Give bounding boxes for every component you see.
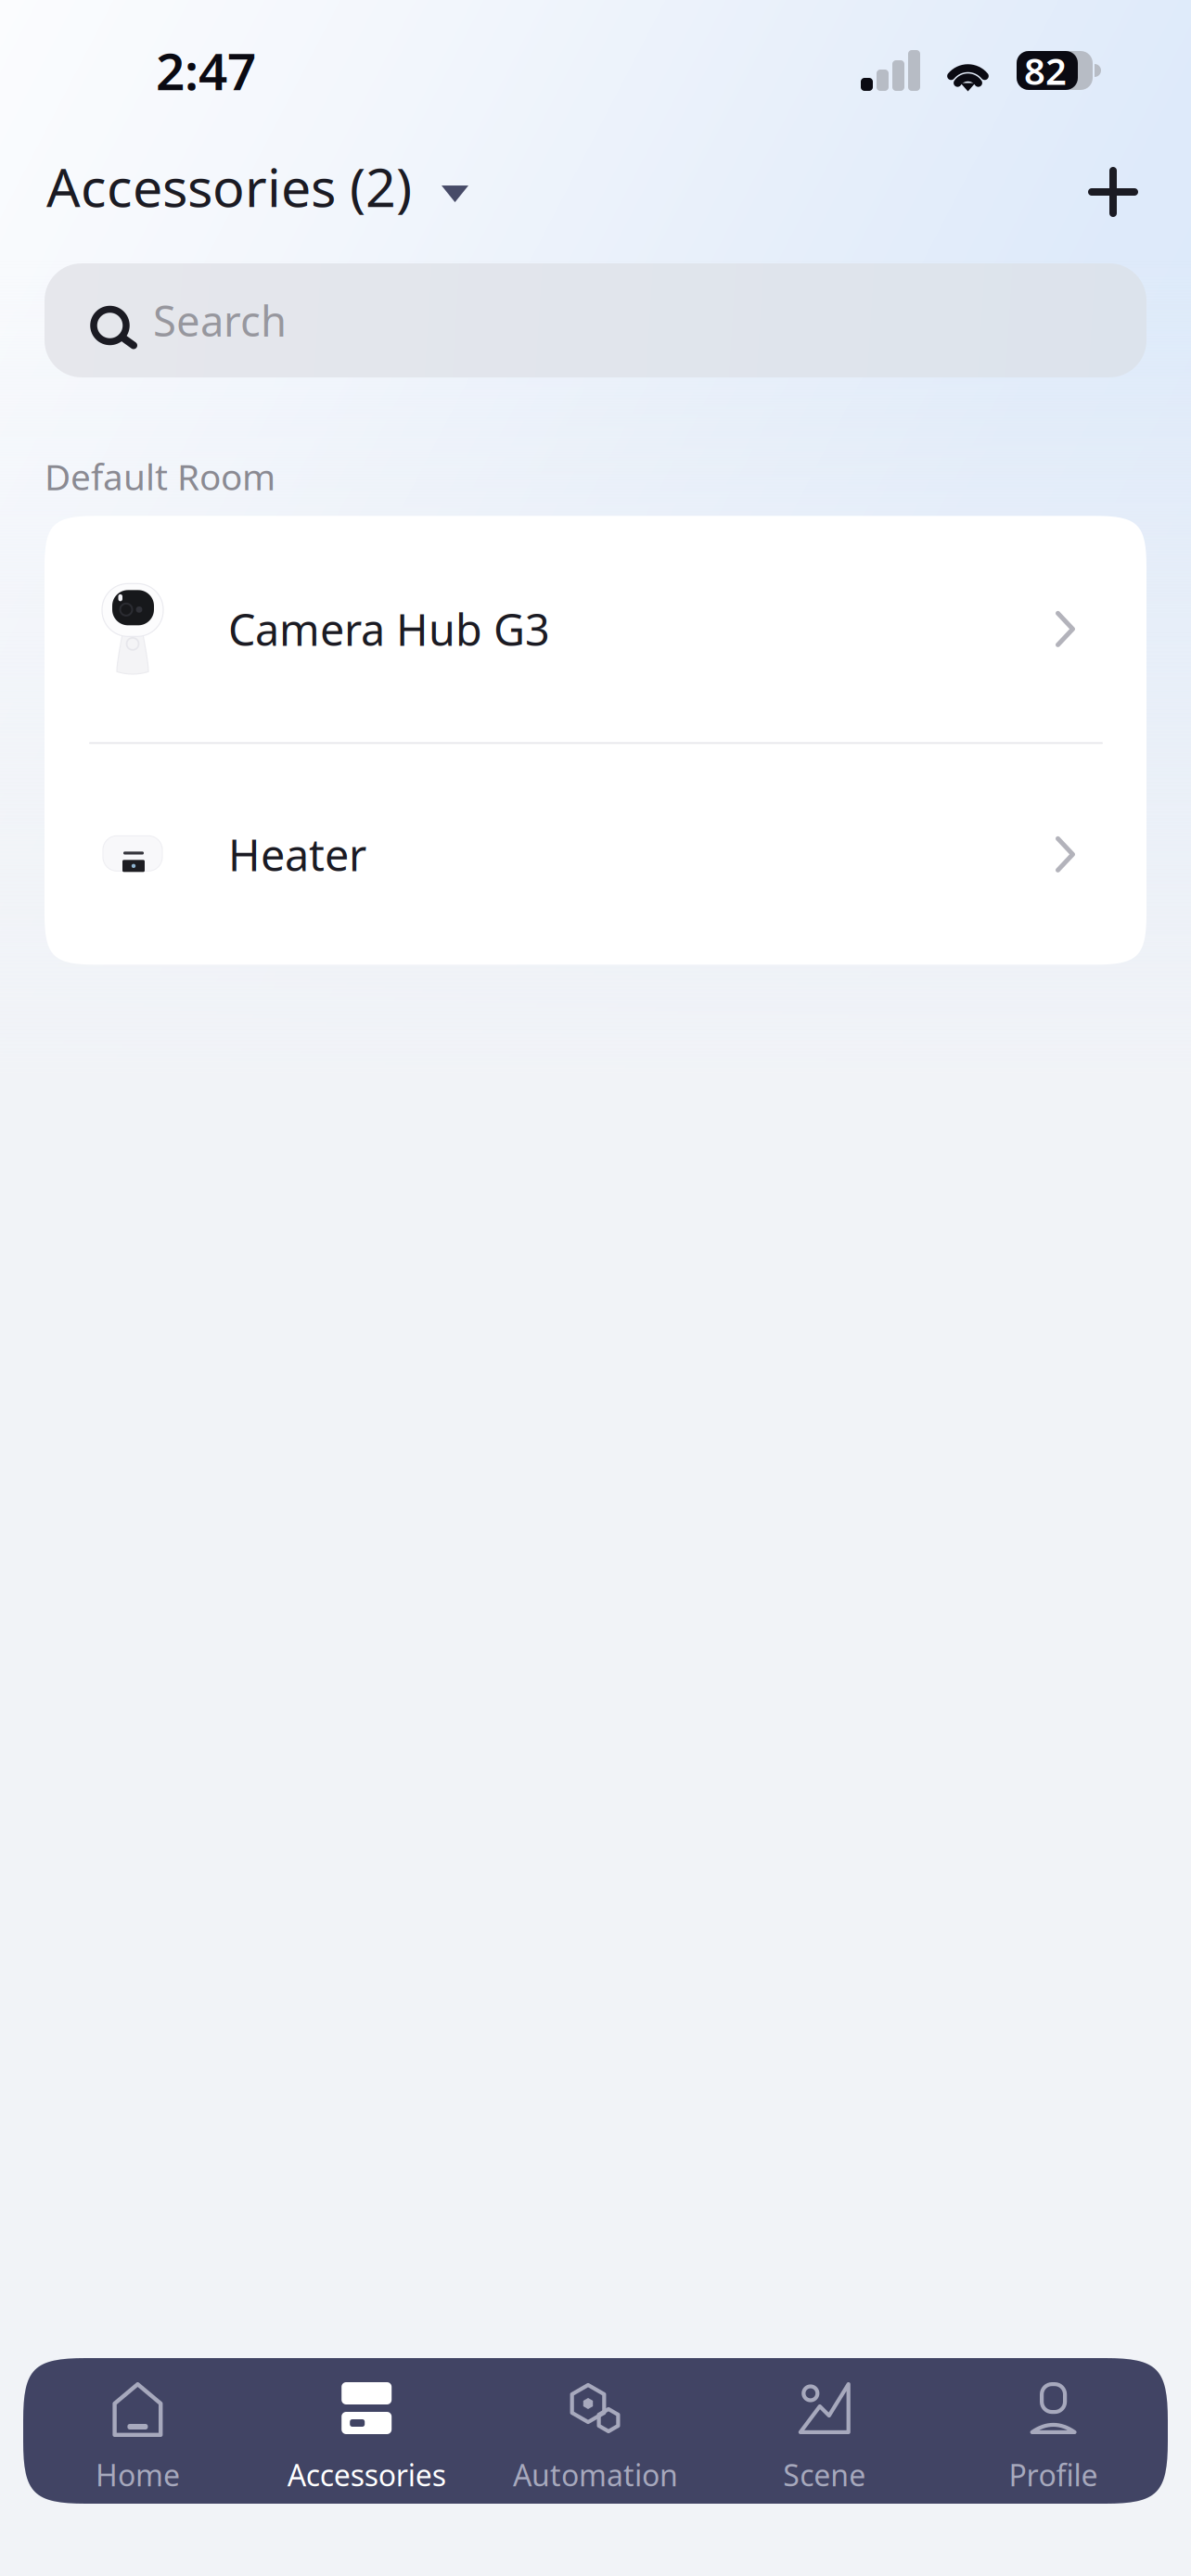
button[interactable]: Accessories xyxy=(252,2358,481,2504)
button[interactable]: Scene xyxy=(710,2358,939,2504)
staticText: Search xyxy=(153,292,287,348)
button[interactable]: Add accessory xyxy=(1067,134,1191,238)
staticText: Automation xyxy=(513,2455,678,2494)
staticText: 2:47 xyxy=(156,37,256,104)
button[interactable]: Heater xyxy=(45,744,1146,965)
button[interactable]: Home xyxy=(23,2358,252,2504)
staticText: Accessories (2) xyxy=(46,151,412,222)
button[interactable]: Search xyxy=(45,263,1146,377)
staticText: Accessories xyxy=(287,2455,446,2494)
button[interactable]: Automation xyxy=(481,2358,710,2504)
button[interactable]: Camera Hub G3 xyxy=(45,516,1146,742)
staticText: Scene xyxy=(783,2455,866,2494)
staticText: Home xyxy=(95,2455,180,2494)
staticText: Heater xyxy=(228,826,366,883)
button[interactable]: Profile xyxy=(939,2358,1168,2504)
staticText: Default Room xyxy=(45,453,275,500)
staticText: 82 xyxy=(1024,46,1067,95)
staticText: Camera Hub G3 xyxy=(228,600,550,658)
staticText: Profile xyxy=(1009,2455,1098,2494)
button[interactable]: Accessories (2) xyxy=(0,140,492,233)
